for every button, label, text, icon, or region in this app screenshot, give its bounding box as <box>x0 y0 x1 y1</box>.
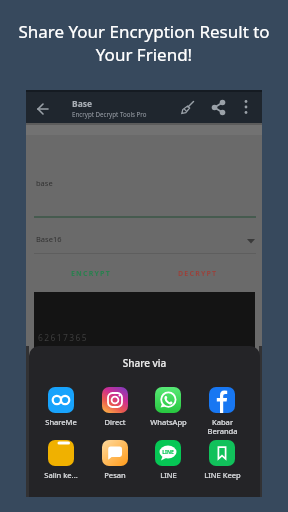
staticText: Direct <box>104 417 126 427</box>
button[interactable]: Salin ke... <box>39 440 83 480</box>
staticText: Share via <box>29 356 260 370</box>
staticText: 62617365 <box>38 332 89 344</box>
button[interactable]: Pesan <box>93 440 137 480</box>
button[interactable]: WhatsApp <box>146 387 190 427</box>
button[interactable]: LINE Keep <box>200 440 244 480</box>
button[interactable]: Kabar Beranda <box>200 387 244 437</box>
staticText: Salin ke... <box>44 470 78 480</box>
staticText: base <box>36 178 53 188</box>
staticText: Base16 <box>36 234 62 244</box>
staticText: Encrypt Decrypt Tools Pro <box>72 110 147 118</box>
staticText: Kabar Beranda <box>207 417 238 437</box>
staticText: DECRYPT <box>178 269 218 279</box>
staticText: Pesan <box>104 470 126 480</box>
staticText: ENCRYPT <box>71 269 111 279</box>
staticText: WhatsApp <box>150 417 187 427</box>
button[interactable]: Direct <box>93 387 137 427</box>
button[interactable]: ShareMe <box>39 387 83 427</box>
staticText: Share Your Encryption Result to Your Fri… <box>0 20 288 66</box>
staticText: ShareMe <box>45 417 77 427</box>
staticText: LINE Keep <box>204 470 241 480</box>
button[interactable]: LINE <box>146 440 190 480</box>
staticText: LINE <box>160 470 177 480</box>
staticText: LINE <box>162 449 174 456</box>
staticText: Base <box>72 98 93 110</box>
